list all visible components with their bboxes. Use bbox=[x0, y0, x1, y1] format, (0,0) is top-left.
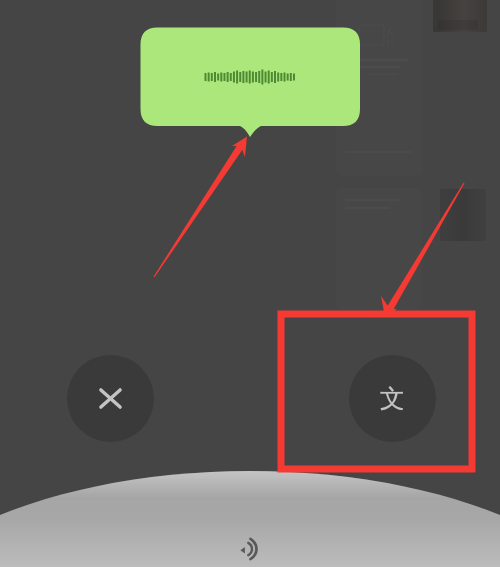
button[interactable]: Convert voice to text bbox=[349, 355, 436, 442]
button[interactable]: Cancel bbox=[67, 355, 154, 442]
staticText: 文 bbox=[380, 383, 405, 414]
